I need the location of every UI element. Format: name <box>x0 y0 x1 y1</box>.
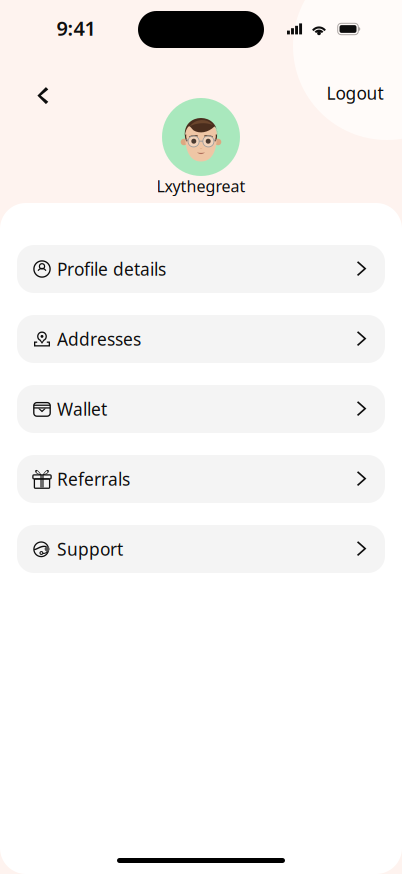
staticText: Profile details <box>57 257 166 280</box>
button[interactable]: Support <box>17 525 385 573</box>
staticText: 9:41 <box>56 15 95 41</box>
button[interactable]: Wallet <box>17 385 385 433</box>
staticText: Logout <box>326 81 383 104</box>
button[interactable]: Logout <box>320 71 390 115</box>
button[interactable]: Profile details <box>17 245 385 293</box>
button[interactable]: Referrals <box>17 455 385 503</box>
staticText: Addresses <box>57 327 141 350</box>
staticText: Referrals <box>57 467 130 490</box>
button[interactable]: Addresses <box>17 315 385 363</box>
button[interactable]: Back <box>21 74 65 118</box>
staticText: Lxythegreat <box>156 175 245 197</box>
staticText: Wallet <box>57 397 107 420</box>
staticText: Support <box>57 537 123 560</box>
